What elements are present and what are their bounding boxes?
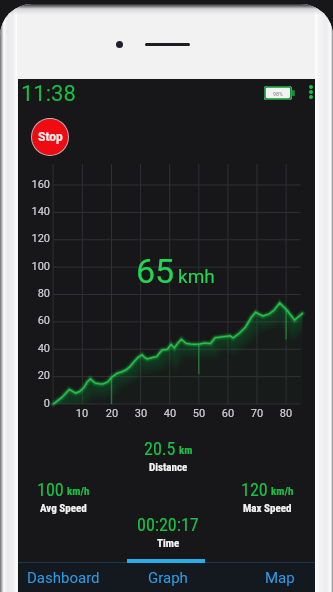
staticText: Graph [148, 569, 188, 587]
staticText: 160 [20, 178, 50, 191]
staticText: 140 [20, 205, 50, 218]
staticText: 40 [159, 407, 181, 420]
staticText: 20.5 [144, 438, 176, 459]
staticText: Max Speed [243, 502, 292, 515]
staticText: 0 [20, 397, 50, 410]
staticText: 30 [130, 407, 152, 420]
staticText: Avg Speed [40, 502, 87, 515]
staticText: 60 [217, 407, 239, 420]
staticText: km/h [271, 485, 294, 498]
staticText: 20 [101, 407, 123, 420]
staticText: 20 [20, 369, 50, 382]
staticText: 50 [188, 407, 210, 420]
staticText: Map [265, 569, 295, 587]
staticText: 98% [273, 90, 283, 97]
staticText: 65 [136, 251, 175, 291]
staticText: kmh [178, 265, 215, 287]
staticText: 70 [246, 407, 268, 420]
button[interactable]: Stop [32, 119, 68, 155]
staticText: 100 [37, 479, 64, 500]
staticText: km/h [67, 485, 90, 498]
staticText: 60 [20, 314, 50, 327]
staticText: Distance [149, 461, 188, 474]
staticText: Dashboard [27, 569, 100, 587]
button[interactable]: More options [308, 85, 313, 99]
staticText: 40 [20, 342, 50, 355]
staticText: 00:20:17 [137, 514, 199, 535]
button[interactable]: Graph [118, 563, 228, 592]
staticText: Stop [38, 130, 63, 144]
staticText: 120 [241, 479, 268, 500]
staticText: 100 [20, 260, 50, 273]
staticText: 120 [20, 232, 50, 245]
staticText: 11:38 [21, 81, 76, 107]
button[interactable]: Dashboard [18, 563, 118, 592]
staticText: 10 [71, 407, 93, 420]
staticText: 80 [275, 407, 297, 420]
staticText: Time [157, 537, 180, 550]
button[interactable]: Map [228, 563, 315, 592]
staticText: km [179, 444, 193, 457]
staticText: 80 [20, 287, 50, 300]
